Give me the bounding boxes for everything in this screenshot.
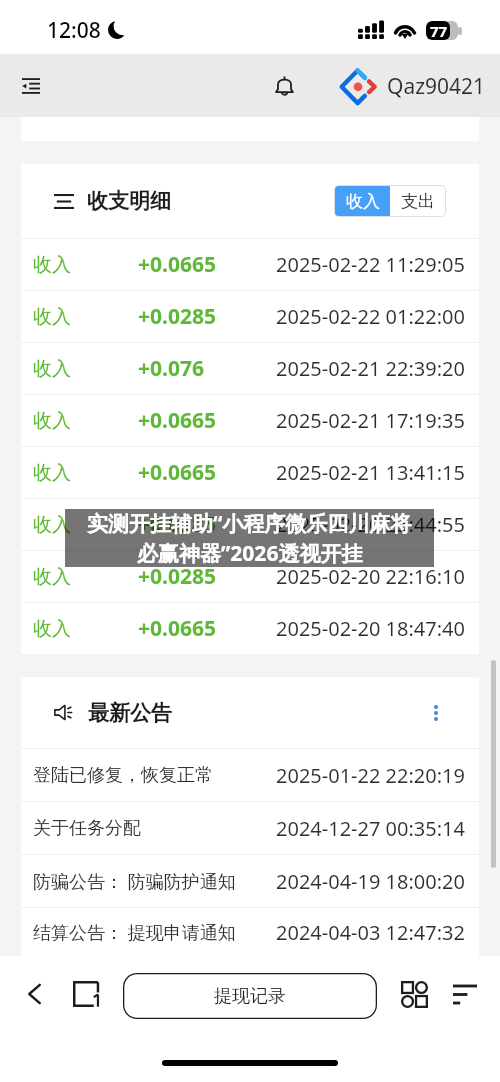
- staticText: 提现记录: [214, 985, 286, 1008]
- staticText: 77: [430, 21, 448, 40]
- staticText: 收入: [33, 305, 138, 329]
- staticText: +0.0285: [138, 302, 276, 331]
- staticText: +0.0665: [138, 614, 276, 643]
- staticText: 2024-04-03 12:47:32: [276, 919, 465, 946]
- staticText: +0.0665: [138, 250, 276, 279]
- staticText: 支出: [401, 191, 435, 212]
- button[interactable]: Menu: [445, 974, 485, 1014]
- staticText: 2025-02-22 11:29:05: [276, 251, 465, 278]
- button[interactable]: 收入: [335, 186, 390, 216]
- staticText: 收入: [33, 617, 138, 641]
- staticText: 2025-02-20 18:47:40: [276, 615, 465, 642]
- button[interactable]: 收入: [21, 551, 479, 602]
- staticText: +0.0285: [138, 510, 276, 539]
- staticText: 2025-02-21 17:19:35: [276, 407, 465, 434]
- staticText: 必赢神器”2026透视开挂: [137, 539, 363, 567]
- button[interactable]: 收入: [21, 239, 479, 290]
- button[interactable]: 结算公告： 提现申请通知: [21, 908, 479, 956]
- staticText: 收入: [33, 409, 138, 433]
- staticText: 最新公告: [88, 700, 172, 726]
- staticText: 收入: [33, 461, 138, 485]
- staticText: 2024-12-27 00:35:14: [276, 815, 465, 842]
- button[interactable]: Menu: [9, 64, 53, 108]
- staticText: 关于任务分配: [33, 817, 276, 840]
- button[interactable]: 防骗公告： 防骗防护通知: [21, 855, 479, 907]
- staticText: 收入: [33, 513, 138, 537]
- staticText: 2025-01-22 22:20:19: [276, 762, 465, 789]
- staticText: 12:08: [47, 16, 101, 45]
- button[interactable]: 收入: [21, 343, 479, 394]
- staticText: +0.0285: [138, 562, 276, 591]
- staticText: 收入: [33, 253, 138, 277]
- button[interactable]: 收入: [21, 499, 479, 550]
- button[interactable]: 收入: [21, 395, 479, 446]
- button[interactable]: Notifications: [262, 64, 306, 108]
- button[interactable]: Back: [14, 974, 54, 1014]
- button[interactable]: Mini programs: [394, 974, 434, 1014]
- staticText: Qaz90421: [387, 72, 486, 101]
- staticText: 收支明细: [87, 188, 171, 214]
- button[interactable]: 收入: [21, 447, 479, 498]
- staticText: 2025-02-21 13:41:15: [276, 459, 465, 486]
- staticText: 2024-04-19 18:00:20: [276, 868, 465, 895]
- button[interactable]: 提现记录: [123, 973, 377, 1019]
- staticText: +0.076: [138, 354, 276, 383]
- button[interactable]: Qaz90421: [337, 61, 488, 111]
- button[interactable]: 登陆已修复，恢复正常: [21, 749, 479, 801]
- staticText: 2025-02-21 22:39:20: [276, 355, 465, 382]
- staticText: 实测开挂辅助“小程序微乐四川麻将: [87, 509, 412, 538]
- staticText: 2025-02-22 01:22:00: [276, 303, 465, 330]
- button[interactable]: 收入: [21, 291, 479, 342]
- button[interactable]: More options: [423, 700, 449, 726]
- button[interactable]: 支出: [390, 186, 445, 216]
- staticText: 2025-02-20 22:16:10: [276, 563, 465, 590]
- staticText: +0.0665: [138, 406, 276, 435]
- staticText: 收入: [33, 565, 138, 589]
- staticText: 登陆已修复，恢复正常: [33, 764, 276, 787]
- staticText: 防骗公告： 防骗防护通知: [33, 869, 276, 894]
- button[interactable]: 关于任务分配: [21, 802, 479, 854]
- button[interactable]: Tabs: [66, 974, 106, 1014]
- staticText: +0.0665: [138, 458, 276, 487]
- staticText: 结算公告： 提现申请通知: [33, 920, 276, 945]
- staticText: 收入: [346, 191, 380, 212]
- staticText: 2025-02-20 23:44:55: [276, 511, 465, 538]
- button[interactable]: 收入: [21, 603, 479, 654]
- staticText: 收入: [33, 357, 138, 381]
